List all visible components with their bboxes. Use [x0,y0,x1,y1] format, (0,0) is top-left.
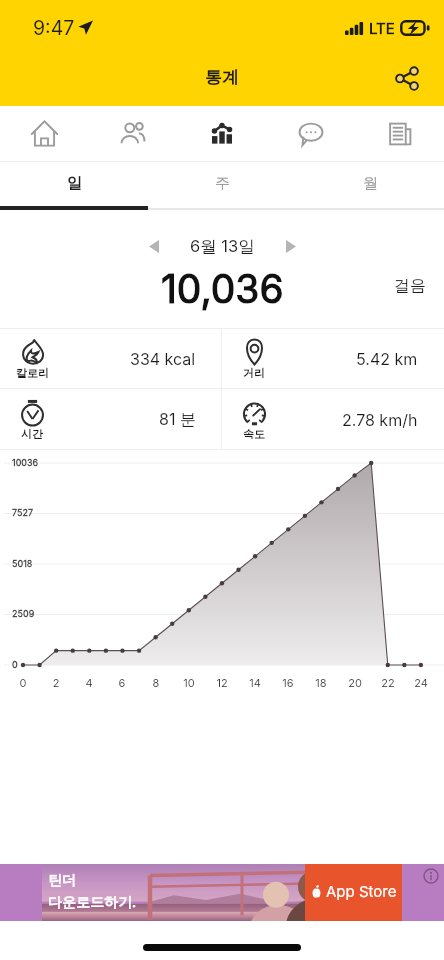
button[interactable]: Chat [266,106,355,161]
staticText: 5.42 km [356,349,418,368]
staticText: 0 [12,676,34,689]
staticText: 거리 [243,366,265,380]
staticText: 2509 [12,608,35,619]
staticText: 14 [244,676,266,689]
button[interactable]: Previous day [136,228,172,264]
staticText: 월 [363,174,378,193]
staticText: 통계 [205,67,239,88]
staticText: 6월 13일 [190,236,255,257]
button[interactable]: 일 [0,162,148,211]
button[interactable]: 속도 [222,389,444,449]
button[interactable]: Friends [88,106,177,161]
staticText: 334 kcal [130,349,196,368]
staticText: 4 [78,676,100,689]
button[interactable]: 주 [148,162,296,211]
staticText: LTE [369,19,395,37]
staticText: 2 [45,676,67,689]
staticText: 걸음 [394,276,426,296]
staticText: 7527 [12,507,34,518]
staticText: 시간 [21,427,43,441]
staticText: 20 [344,676,366,689]
button[interactable]: 시간 [0,389,222,449]
staticText: 일 [67,174,82,193]
staticText: 주 [215,174,230,193]
staticText: 칼로리 [16,366,49,380]
staticText: 0 [12,659,18,670]
button[interactable]: 거리 [222,329,444,388]
staticText: 10036 [12,457,39,468]
button[interactable]: Next day [273,228,309,264]
staticText: App Store [326,882,397,900]
staticText: 18 [310,676,332,689]
staticText: 속도 [243,427,265,441]
staticText: 81 분 [159,409,196,429]
staticText: 12 [211,676,233,689]
button[interactable]: News [355,106,444,161]
button[interactable]: App Store [0,864,444,921]
button[interactable]: Share [387,58,427,98]
staticText: 24 [410,676,432,689]
button[interactable]: Home [0,106,88,161]
staticText: 9:47 [33,16,75,40]
staticText: 22 [377,676,399,689]
button[interactable]: 칼로리 [0,329,222,388]
staticText: 다운로드하기. [48,893,137,911]
staticText: 틴더 [48,872,76,890]
staticText: 10 [178,676,200,689]
staticText: 10,036 [161,265,284,312]
staticText: 8 [145,676,167,689]
button[interactable]: Statistics [177,106,266,161]
button[interactable]: 월 [296,162,444,211]
staticText: 2.78 km/h [342,410,418,429]
staticText: 6 [111,676,133,689]
staticText: 16 [277,676,299,689]
staticText: 5018 [12,558,33,569]
